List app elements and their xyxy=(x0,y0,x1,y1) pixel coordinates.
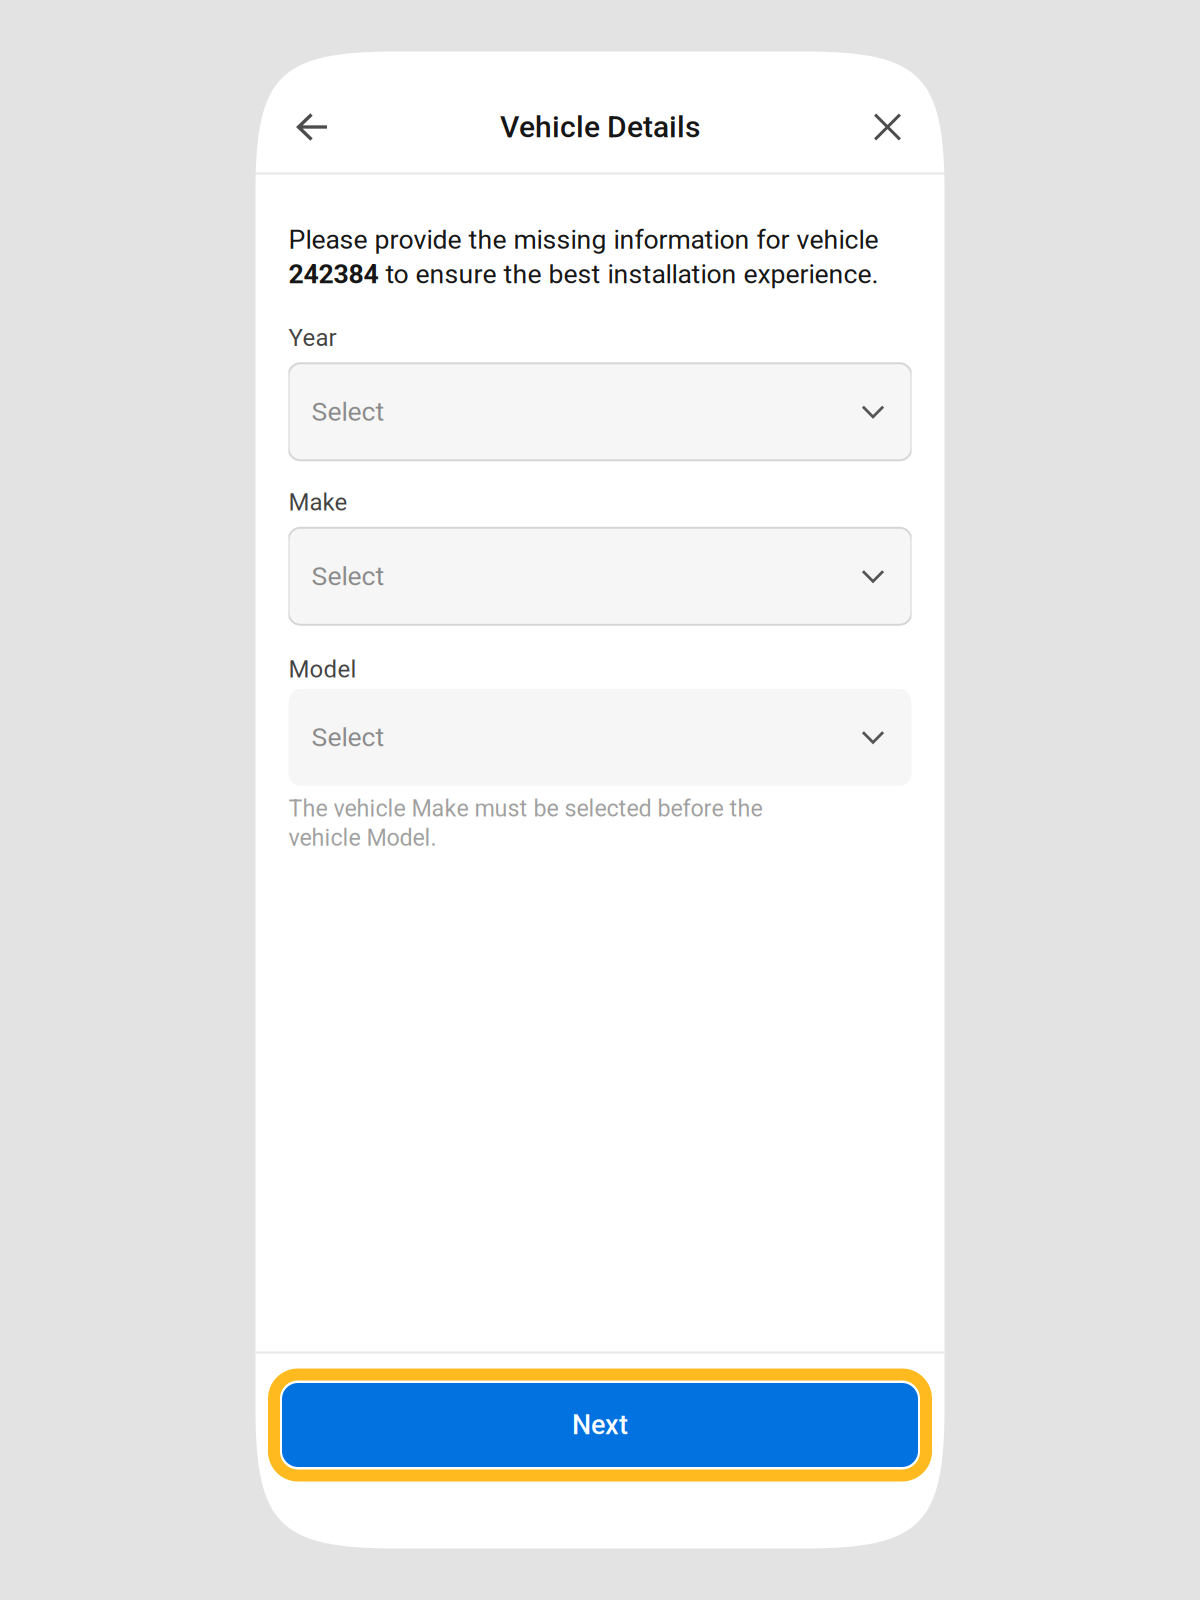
button[interactable]: Back xyxy=(281,96,343,158)
staticText: The vehicle Make must be selected before… xyxy=(288,795,762,851)
staticText: Next xyxy=(572,1409,628,1441)
staticText: Select xyxy=(311,561,384,592)
staticText: Year xyxy=(288,324,336,352)
button[interactable]: Select xyxy=(288,528,911,625)
button[interactable]: Close xyxy=(856,96,918,158)
staticText: Select xyxy=(311,396,384,427)
staticText: Please provide the missing information f… xyxy=(288,224,878,289)
button[interactable]: Next xyxy=(255,1368,944,1481)
button[interactable]: Select xyxy=(288,363,911,460)
staticText: Model xyxy=(288,655,356,683)
staticText: Select xyxy=(311,722,384,753)
staticText: Vehicle Details xyxy=(500,109,700,145)
button[interactable]: Select xyxy=(288,689,911,786)
staticText: Make xyxy=(288,488,347,516)
